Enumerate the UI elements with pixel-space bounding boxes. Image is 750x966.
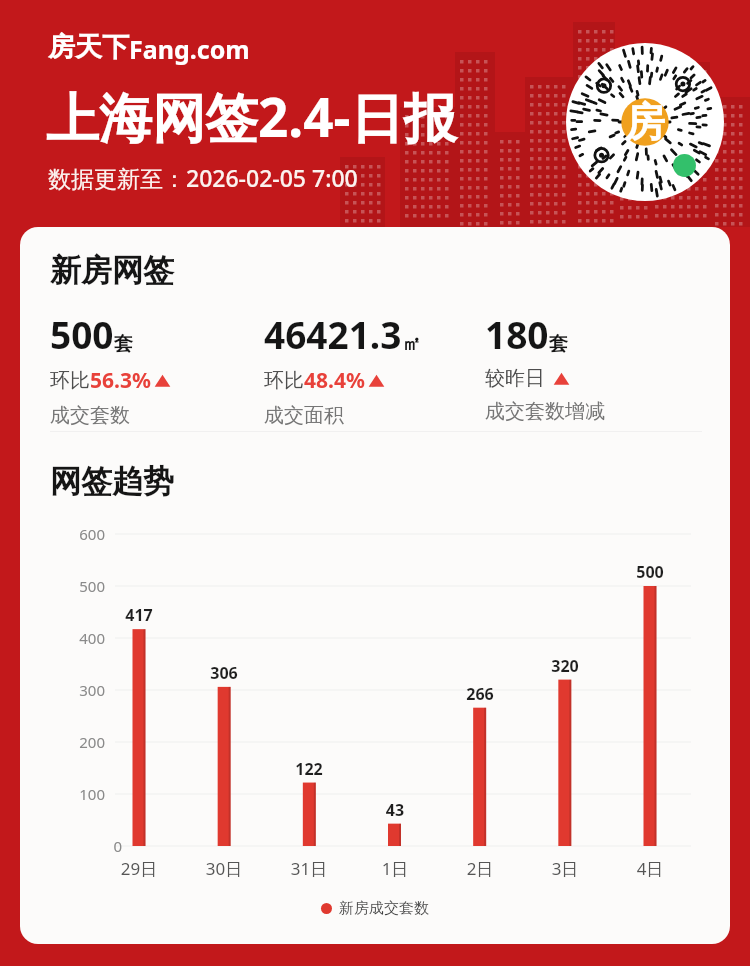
staticText: 320 bbox=[540, 655, 590, 677]
staticText: 500 bbox=[50, 309, 114, 359]
staticText: 套 bbox=[114, 332, 133, 356]
staticText: 200 bbox=[75, 732, 105, 752]
staticText: 网签趋势 bbox=[50, 462, 174, 501]
staticText: 56.3% bbox=[90, 366, 151, 395]
staticText: 0 bbox=[92, 836, 122, 856]
staticText: 环比 bbox=[50, 368, 90, 393]
staticText: 300 bbox=[75, 680, 105, 700]
staticText: 1日 bbox=[365, 857, 425, 880]
staticText: 500 bbox=[625, 561, 675, 583]
staticText: 29日 bbox=[109, 857, 169, 880]
staticText: 套 bbox=[549, 332, 568, 356]
staticText: 30日 bbox=[194, 857, 254, 880]
staticText: 600 bbox=[75, 524, 105, 544]
staticText: 43 bbox=[370, 799, 420, 821]
staticText: 306 bbox=[199, 662, 249, 684]
staticText: 新房成交套数 bbox=[339, 899, 429, 918]
staticText: 31日 bbox=[279, 857, 339, 880]
staticText: 4日 bbox=[620, 857, 680, 880]
staticText: 成交套数 bbox=[50, 403, 130, 428]
staticText: ㎡ bbox=[402, 332, 421, 356]
button[interactable]: 房天下小程序码 bbox=[566, 43, 724, 201]
staticText: 上海网签2.4-日报 bbox=[46, 80, 457, 152]
staticText: 房天下 bbox=[48, 30, 129, 64]
staticText: 3日 bbox=[535, 857, 595, 880]
staticText: 新房网签 bbox=[50, 251, 174, 290]
staticText: 2日 bbox=[450, 857, 510, 880]
staticText: 500 bbox=[75, 576, 105, 596]
staticText: 成交套数增减 bbox=[485, 399, 605, 424]
staticText: 417 bbox=[114, 604, 164, 626]
staticText: 较昨日 bbox=[485, 366, 545, 391]
staticText: 数据更新至：2026-02-05 7:00 bbox=[48, 162, 358, 193]
staticText: 180 bbox=[485, 309, 549, 359]
staticText: 48.4% bbox=[304, 366, 365, 395]
staticText: 环比 bbox=[264, 368, 304, 393]
staticText: 266 bbox=[455, 683, 505, 705]
staticText: 成交面积 bbox=[264, 403, 344, 428]
staticText: 房 bbox=[625, 97, 665, 147]
staticText: 122 bbox=[284, 758, 334, 780]
staticText: 46421.3 bbox=[264, 309, 402, 359]
staticText: Fang.com bbox=[129, 32, 250, 66]
staticText: 400 bbox=[75, 628, 105, 648]
staticText: 100 bbox=[75, 784, 105, 804]
